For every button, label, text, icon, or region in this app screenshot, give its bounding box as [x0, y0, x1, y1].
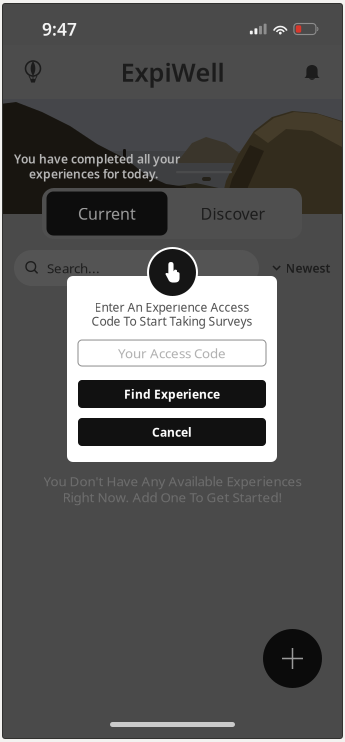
- button[interactable]: Current: [46, 191, 167, 235]
- button[interactable]: Notifications: [290, 51, 334, 95]
- staticText: Search...: [47, 259, 100, 277]
- button[interactable]: Cancel: [78, 418, 266, 446]
- staticText: ExpiWell: [120, 55, 224, 89]
- staticText: Cancel: [152, 424, 192, 440]
- staticText: Find Experience: [124, 386, 220, 402]
- button[interactable]: Add experience: [263, 629, 322, 688]
- staticText: You Don't Have Any Available Experiences: [43, 472, 301, 490]
- button[interactable]: Experiences: [11, 50, 55, 94]
- staticText: Newest: [285, 260, 330, 276]
- staticText: experiences for today.: [29, 166, 158, 182]
- staticText: 9:47: [42, 17, 77, 40]
- staticText: You have completed all your: [14, 151, 180, 167]
- button[interactable]: Find Experience: [78, 380, 266, 408]
- staticText: Enter An Experience Access: [94, 299, 249, 315]
- staticText: Current: [78, 203, 136, 224]
- button[interactable]: Newest: [273, 250, 331, 286]
- staticText: Discover: [200, 203, 265, 224]
- staticText: Code To Start Taking Surveys: [91, 313, 252, 329]
- button[interactable]: Discover: [168, 191, 298, 235]
- staticText: Right Now. Add One To Get Started!: [62, 488, 282, 506]
- staticText: Your Access Code: [118, 344, 226, 362]
